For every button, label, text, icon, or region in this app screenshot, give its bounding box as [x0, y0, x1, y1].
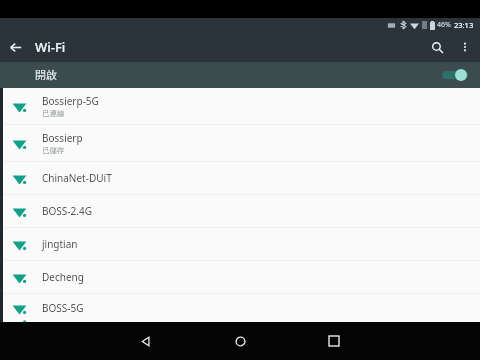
staticText: 開啟	[35, 68, 57, 82]
button[interactable]: Search	[422, 32, 452, 62]
staticText: Bossierp	[42, 131, 83, 145]
button[interactable]: Back	[0, 32, 30, 62]
staticText: Bossierp-5G	[42, 94, 99, 108]
staticText: ChinaNet-DUiT	[42, 171, 112, 185]
button[interactable]: Bossierp	[0, 125, 480, 161]
button[interactable]: Home	[212, 322, 268, 360]
staticText: 23:13	[454, 20, 474, 30]
button[interactable]: Back	[118, 322, 174, 360]
staticText: Decheng	[42, 270, 84, 284]
staticText: BOSS-5G	[42, 301, 84, 315]
staticText: 46%	[437, 20, 451, 30]
staticText: jingtian	[42, 237, 78, 251]
button[interactable]: jingtian	[0, 228, 480, 260]
staticText: BOSS-2.4G	[42, 204, 92, 218]
button[interactable]: ChinaNet-DUiT	[0, 162, 480, 194]
button[interactable]: Bossierp-5G	[0, 88, 480, 124]
button[interactable]: BOSS-2.4G	[0, 195, 480, 227]
button[interactable]: BOSS-5G	[0, 294, 480, 322]
button[interactable]: 開啟	[0, 62, 480, 88]
staticText: 已儲存	[42, 146, 65, 155]
button[interactable]: More options	[452, 34, 478, 60]
button[interactable]: Recent apps	[306, 322, 362, 360]
button[interactable]: Decheng	[0, 261, 480, 293]
staticText: 已連線	[42, 109, 65, 118]
staticText: Wi-Fi	[35, 38, 66, 56]
